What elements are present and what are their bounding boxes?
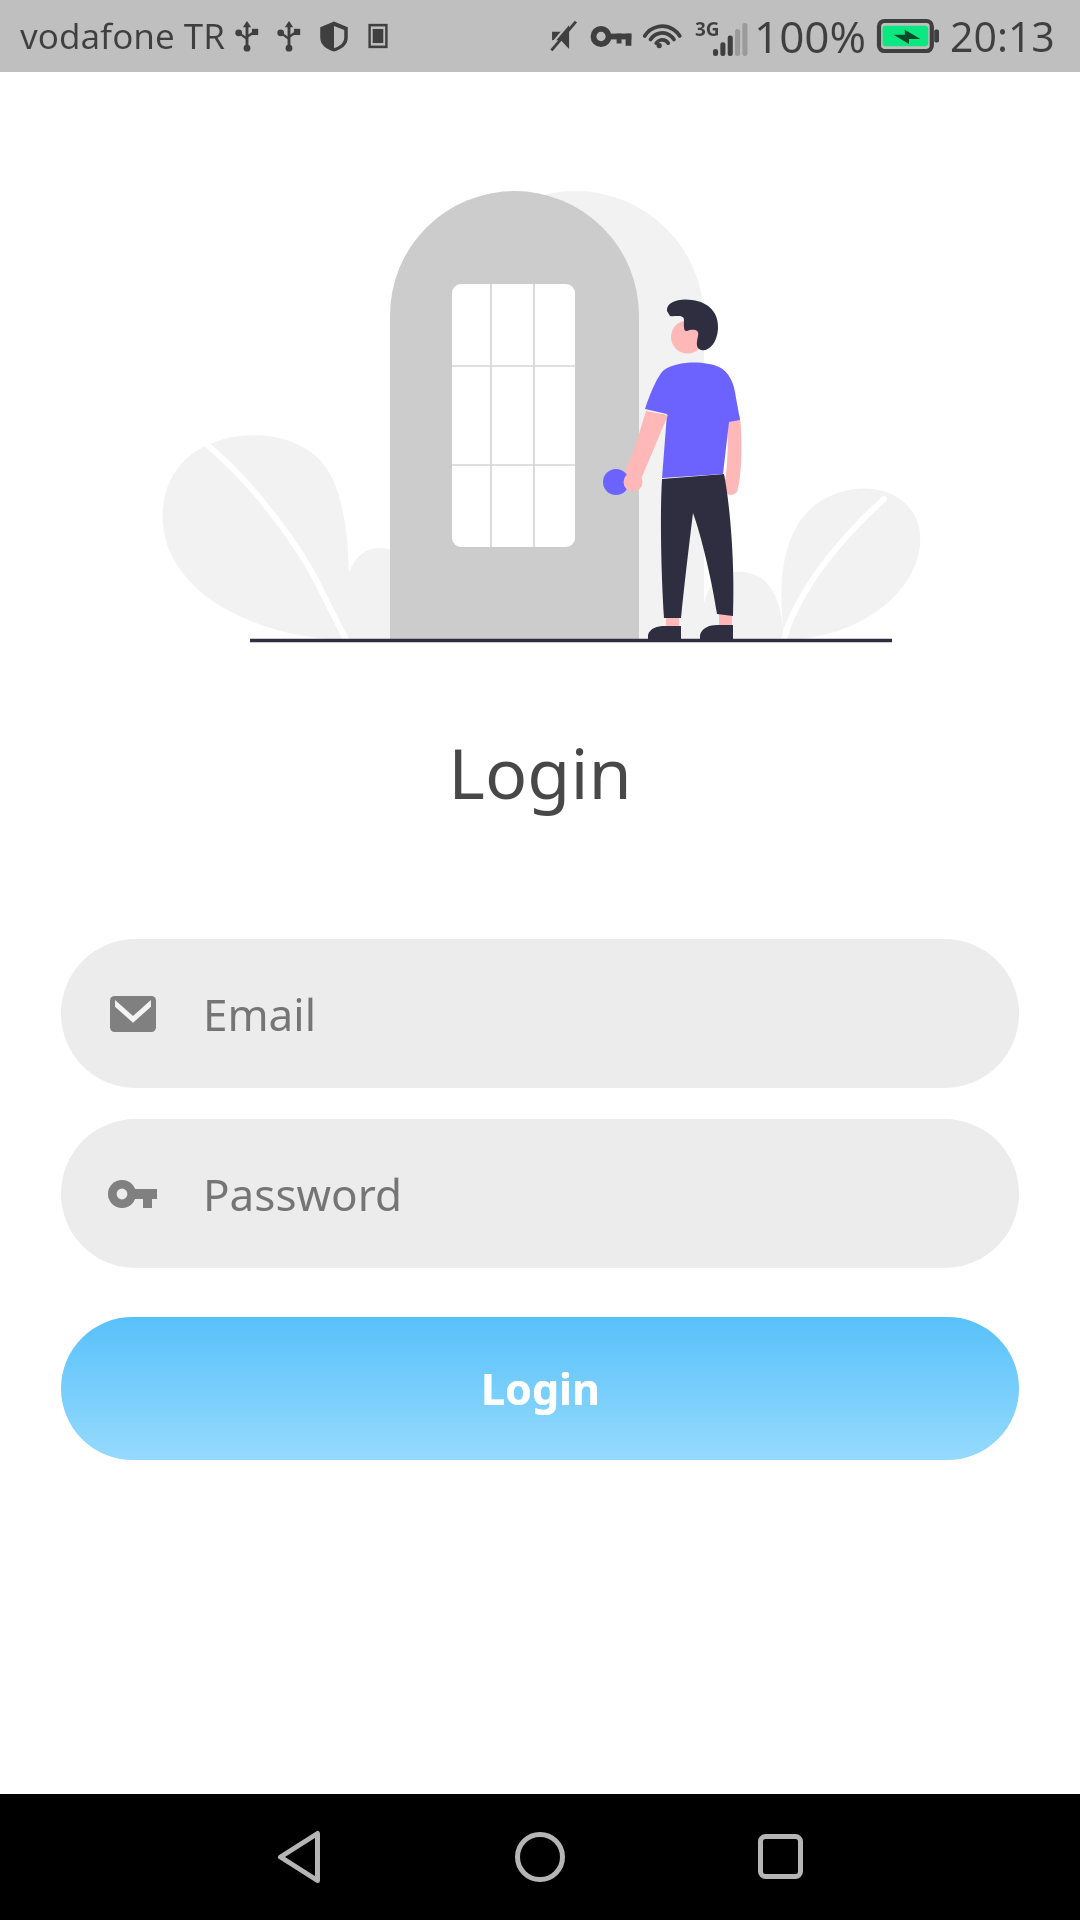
staticText: Email bbox=[203, 984, 316, 1044]
button[interactable]: Email bbox=[61, 939, 1019, 1088]
staticText: 3G bbox=[695, 16, 720, 42]
button[interactable]: Login bbox=[61, 1317, 1019, 1460]
staticText: Login bbox=[0, 724, 1080, 819]
button[interactable]: Home bbox=[480, 1797, 600, 1917]
staticText: 20:13 bbox=[950, 8, 1055, 64]
button[interactable]: Password bbox=[61, 1119, 1019, 1268]
staticText: vodafone TR bbox=[20, 12, 226, 60]
staticText: Login bbox=[481, 1359, 600, 1418]
staticText: 100% bbox=[754, 6, 867, 66]
staticText: Password bbox=[203, 1164, 403, 1224]
button[interactable]: Recents bbox=[720, 1796, 840, 1916]
button[interactable]: Back bbox=[239, 1797, 359, 1917]
